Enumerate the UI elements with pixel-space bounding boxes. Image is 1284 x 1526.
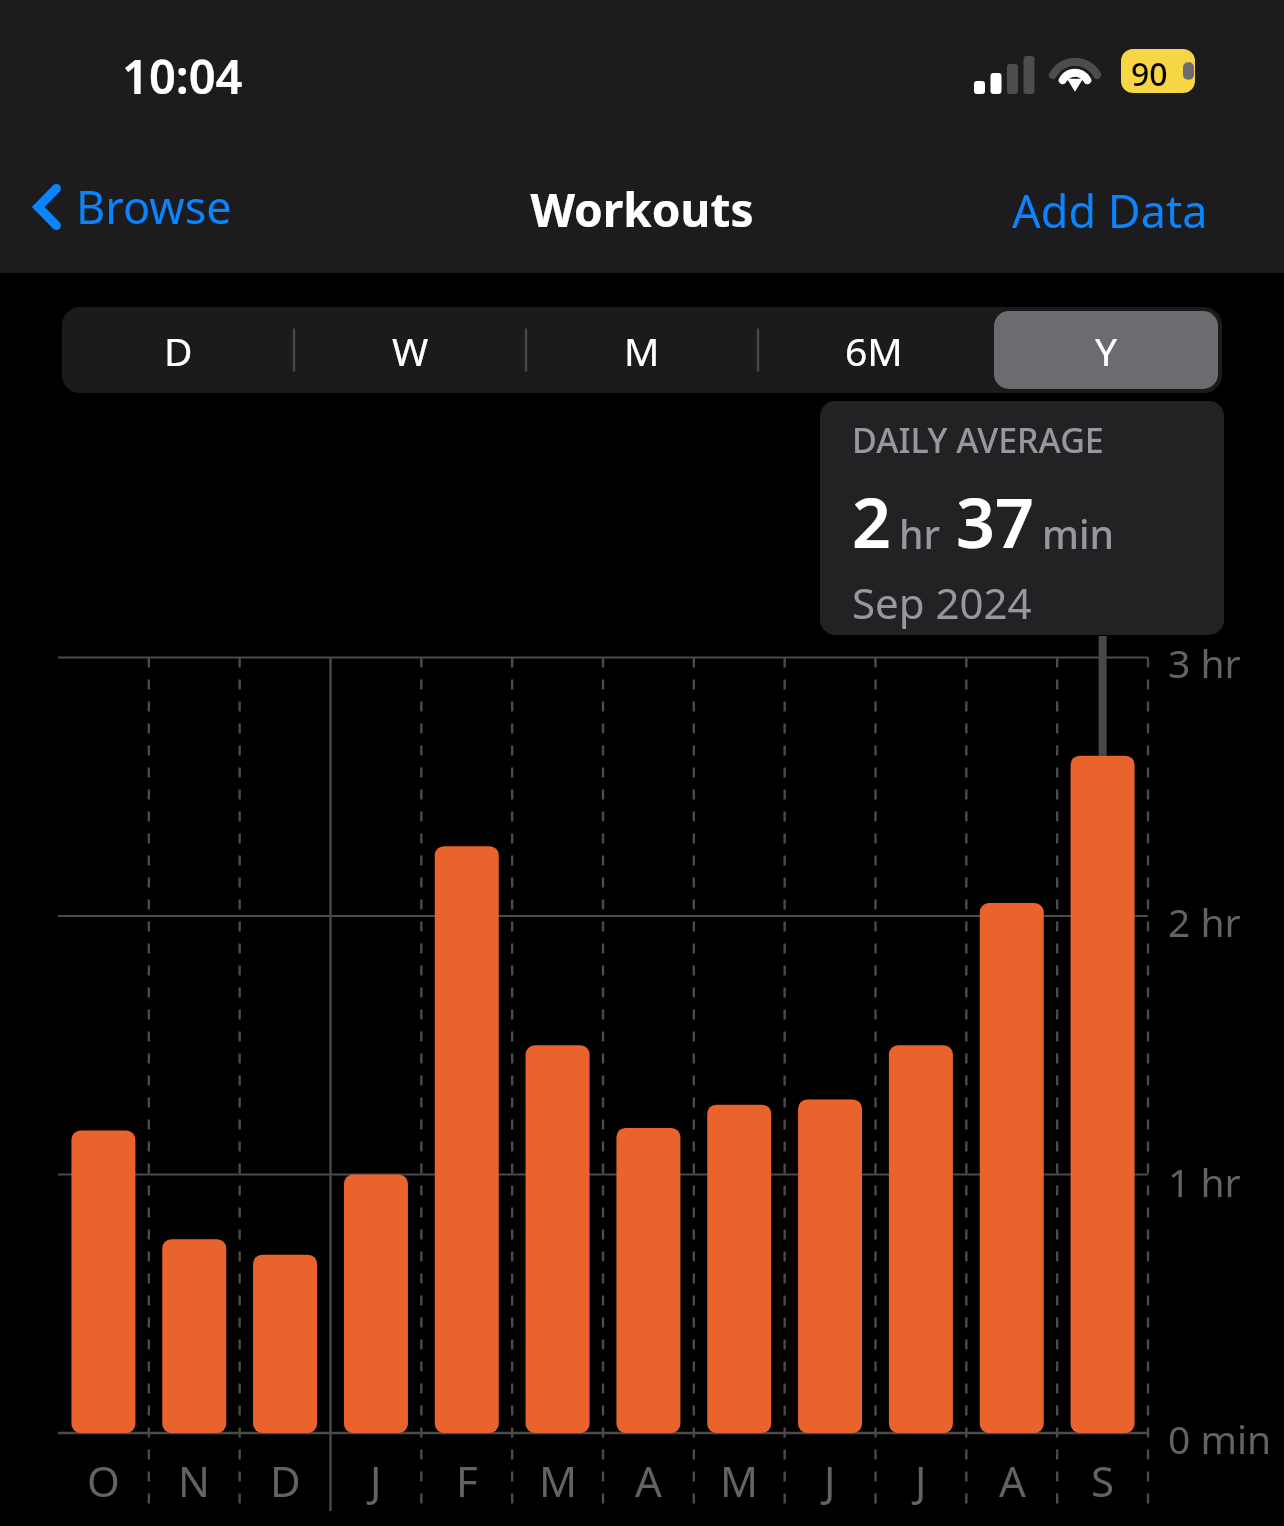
- staticText: M: [720, 1452, 759, 1509]
- staticText: A: [635, 1452, 662, 1509]
- staticText: A: [999, 1452, 1026, 1509]
- staticText: Browse: [76, 176, 232, 237]
- staticText: F: [456, 1452, 478, 1509]
- staticText: N: [178, 1452, 210, 1509]
- staticText: 90: [1131, 52, 1168, 96]
- staticText: W: [392, 324, 429, 377]
- button[interactable]: W: [298, 311, 522, 389]
- staticText: 2: [852, 475, 891, 568]
- staticText: D: [270, 1452, 301, 1509]
- staticText: 10:04: [122, 44, 243, 108]
- button[interactable]: Add Data: [1002, 172, 1218, 249]
- staticText: M: [624, 324, 660, 377]
- staticText: S: [1091, 1452, 1115, 1509]
- button[interactable]: DAILY AVERAGE: [820, 401, 1224, 635]
- staticText: 0 min: [1168, 1412, 1272, 1465]
- button[interactable]: D: [66, 311, 290, 389]
- staticText: 3 hr: [1168, 636, 1241, 689]
- staticText: J: [370, 1452, 382, 1509]
- staticText: 2 hr: [1168, 895, 1241, 948]
- button[interactable]: M: [530, 311, 754, 389]
- staticText: hr: [899, 507, 940, 560]
- staticText: 1 hr: [1168, 1155, 1241, 1208]
- staticText: J: [915, 1452, 927, 1509]
- staticText: Add Data: [1012, 180, 1208, 241]
- staticText: Y: [1095, 324, 1118, 377]
- staticText: 6M: [845, 324, 903, 377]
- staticText: Workouts: [0, 178, 1284, 241]
- staticText: D: [164, 324, 193, 377]
- button[interactable]: Browse: [24, 168, 242, 245]
- button[interactable]: 6M: [762, 311, 986, 389]
- staticText: J: [824, 1452, 836, 1509]
- staticText: DAILY AVERAGE: [852, 417, 1104, 463]
- staticText: M: [539, 1452, 578, 1509]
- staticText: O: [87, 1452, 120, 1509]
- staticText: min: [1042, 507, 1114, 560]
- staticText: 37: [956, 475, 1034, 568]
- button[interactable]: Y: [994, 311, 1218, 389]
- staticText: Sep 2024: [852, 574, 1032, 631]
